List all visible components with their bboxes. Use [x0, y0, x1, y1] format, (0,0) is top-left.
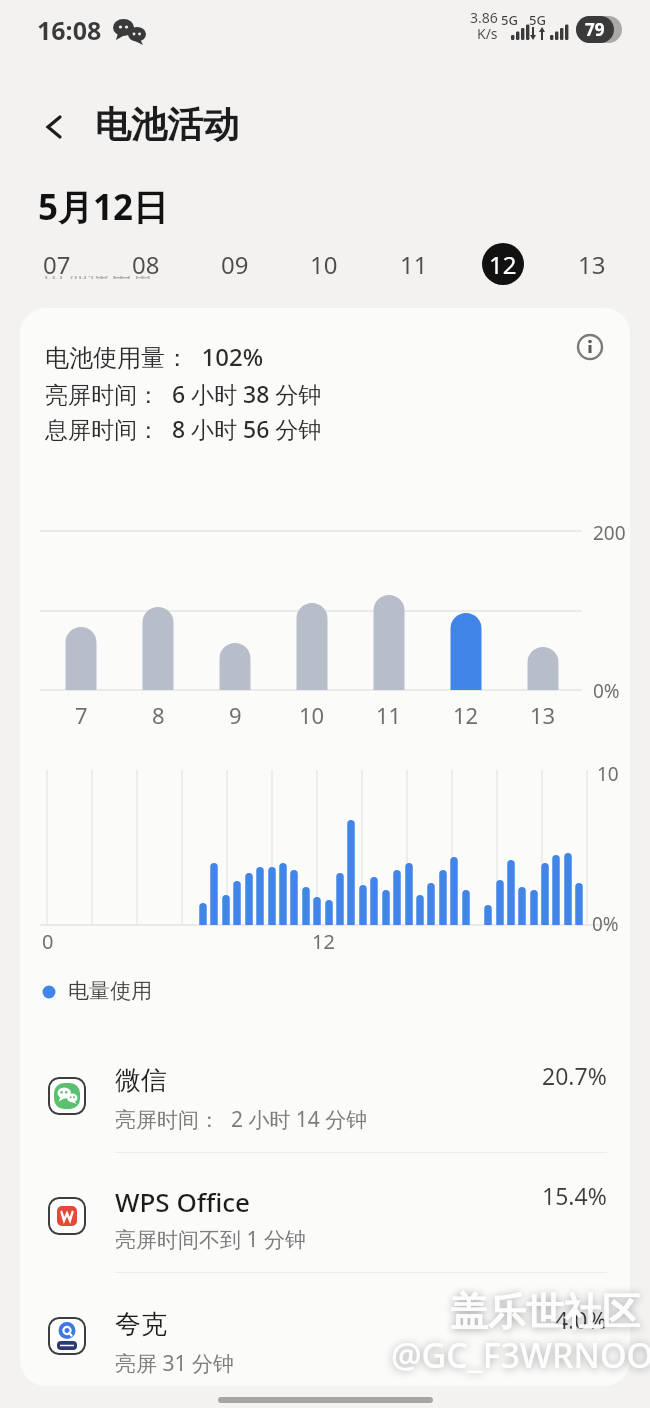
- staticText: K/s: [477, 24, 498, 43]
- staticText: 16:08: [37, 13, 102, 47]
- staticText: 0: [42, 928, 54, 955]
- staticText: 8: [152, 700, 165, 730]
- staticText: 12: [312, 928, 335, 955]
- staticText: 电量使用: [68, 978, 152, 1004]
- staticText: 11: [376, 700, 402, 730]
- button[interactable]: 07: [17, 248, 97, 281]
- staticText: WPS Office: [115, 1184, 251, 1219]
- staticText: 亮屏时间： 6 小时 38 分钟: [45, 378, 322, 409]
- button[interactable]: [44, 116, 66, 138]
- staticText: 息屏时间： 8 小时 56 分钟: [45, 413, 322, 444]
- button[interactable]: 11: [374, 248, 454, 281]
- staticText: 10: [299, 700, 325, 730]
- staticText: 亮屏 31 分钟: [115, 1349, 234, 1378]
- staticText: 5G: [529, 11, 546, 29]
- staticText: 200: [593, 520, 626, 546]
- staticText: 9: [229, 700, 242, 730]
- staticText: 0%: [592, 911, 619, 937]
- staticText: 79: [585, 18, 605, 41]
- staticText: 微信: [115, 1064, 167, 1097]
- staticText: 4.0%: [555, 1304, 607, 1335]
- staticText: 11: [400, 248, 428, 281]
- button[interactable]: 12: [482, 243, 524, 285]
- staticText: 亮屏时间不到 1 分钟: [115, 1225, 306, 1254]
- staticText: 09: [221, 248, 249, 281]
- staticText: 08: [132, 248, 160, 281]
- staticText: 5月12日: [38, 183, 169, 231]
- staticText: 20.7%: [542, 1060, 607, 1091]
- staticText: 盖乐世社区: [450, 1288, 640, 1336]
- button[interactable]: 10: [284, 248, 364, 281]
- staticText: 12: [489, 248, 517, 281]
- button[interactable]: 09: [195, 248, 275, 281]
- button[interactable]: 08: [106, 248, 186, 281]
- staticText: 电池活动: [95, 102, 239, 147]
- button[interactable]: [577, 334, 603, 360]
- staticText: 7: [75, 700, 88, 730]
- button[interactable]: 13: [552, 248, 632, 281]
- staticText: 夸克: [115, 1308, 167, 1341]
- staticText: 10: [597, 761, 619, 787]
- staticText: 13: [578, 248, 606, 281]
- button[interactable]: [20, 1048, 630, 1152]
- button[interactable]: [20, 1168, 630, 1272]
- staticText: 15.4%: [542, 1180, 607, 1211]
- staticText: 亮屏时间： 2 小时 14 分钟: [115, 1105, 368, 1134]
- staticText: 0%: [593, 678, 620, 704]
- staticText: 5G: [501, 11, 518, 29]
- staticText: 13: [530, 700, 556, 730]
- staticText: 电池使用量: [44, 276, 154, 279]
- staticText: 12: [453, 700, 479, 730]
- staticText: @GC_F3WRNOO: [391, 1332, 650, 1378]
- staticText: 3.86: [470, 8, 498, 27]
- staticText: 电池使用量： 102%: [45, 340, 264, 373]
- staticText: 07: [43, 248, 71, 281]
- staticText: 10: [310, 248, 338, 281]
- button[interactable]: [20, 1292, 630, 1386]
